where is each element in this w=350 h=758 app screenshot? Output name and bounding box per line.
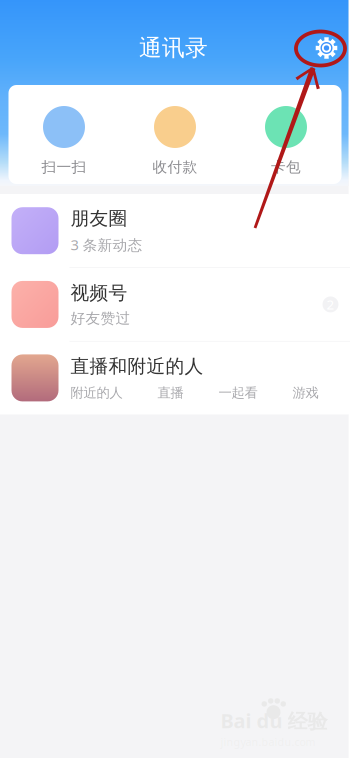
staticText: 视频号 — [70, 281, 127, 304]
staticText: Bai du 经验 — [220, 707, 327, 734]
staticText: 一起看 — [218, 385, 257, 401]
staticText: 2 — [326, 296, 334, 313]
staticText: 附近的人 — [70, 385, 122, 401]
button[interactable]: 卡包 — [230, 106, 341, 176]
staticText: 直播和附近的人 — [70, 355, 203, 378]
staticText: 好友赞过 — [70, 309, 130, 327]
button[interactable]: 朋友圈 — [0, 194, 350, 267]
button[interactable]: 扫一扫 — [8, 106, 119, 176]
staticText: 直播 — [157, 385, 183, 401]
button[interactable]: 设置 — [309, 31, 343, 65]
staticText: 收付款 — [152, 158, 197, 176]
staticText: 扫一扫 — [41, 158, 86, 176]
button[interactable]: 直播和附近的人 — [0, 341, 350, 414]
staticText: 通讯录 — [139, 34, 208, 62]
button[interactable]: 收付款 — [119, 106, 230, 176]
staticText: 朋友圈 — [70, 207, 127, 230]
staticText: 游戏 — [292, 385, 318, 401]
staticText: 3 条新动态 — [70, 235, 142, 254]
staticText: 卡包 — [271, 158, 301, 176]
button[interactable]: 视频号 — [0, 268, 350, 341]
